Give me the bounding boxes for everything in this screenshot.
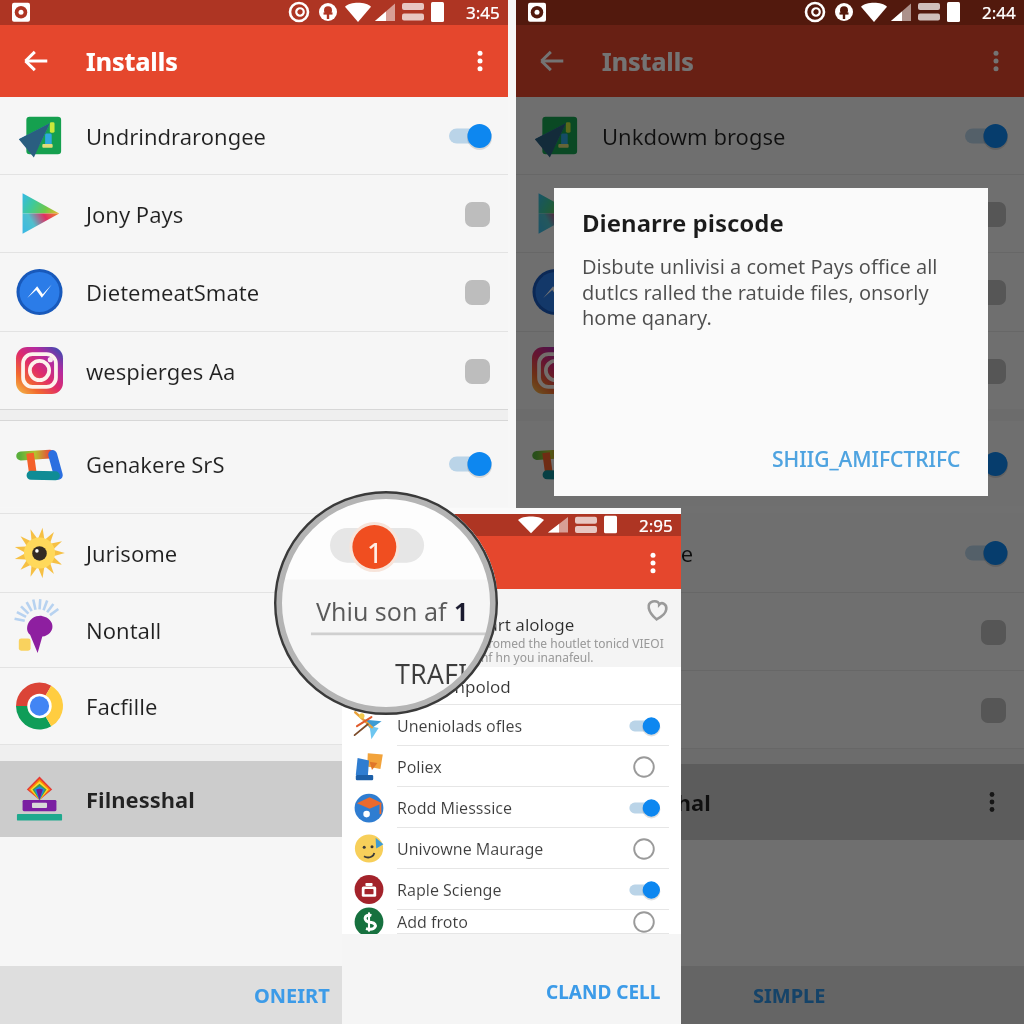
staticText: TRAFI: [395, 655, 468, 692]
staticText: 3:45: [466, 1, 500, 24]
button[interactable]: Row menu: [456, 779, 496, 819]
button[interactable]: Filnesshal: [0, 761, 508, 837]
button[interactable]: More options: [460, 41, 500, 81]
button[interactable]: Jurisome: [516, 513, 1024, 592]
button[interactable]: Unkdowm brogse: [516, 97, 1024, 174]
staticText: wespierges Aa: [86, 356, 236, 386]
staticText: 1: [367, 533, 384, 571]
staticText: Disbute unlivisi a comet Pays office all…: [582, 253, 974, 330]
button[interactable]: Univowne Maurage: [342, 828, 681, 869]
button[interactable]: Rodd Miesssice: [342, 787, 681, 828]
button[interactable]: [516, 175, 1024, 252]
staticText: Jurisome: [602, 538, 694, 568]
staticText: Rodd Miesssice: [397, 797, 512, 819]
button[interactable]: [516, 671, 1024, 748]
button[interactable]: [516, 332, 1024, 409]
staticText: Poliex: [397, 756, 442, 778]
button[interactable]: [516, 253, 1024, 331]
button[interactable]: ONEIRT: [254, 982, 330, 1009]
staticText: Nontall: [86, 615, 162, 645]
button[interactable]: Undrindrarongee: [0, 97, 508, 174]
staticText: Add froto: [397, 911, 468, 933]
staticText: 1: [454, 594, 469, 628]
staticText: Installs: [86, 44, 178, 78]
staticText: Uneniolads ofles: [397, 715, 523, 737]
button[interactable]: Row menu: [972, 782, 1012, 822]
button[interactable]: SIMPLE: [753, 982, 826, 1009]
staticText: Filnesshal: [86, 784, 195, 814]
button[interactable]: More options: [633, 543, 673, 583]
staticText: Univowne Maurage: [397, 838, 544, 860]
staticText: on; fromed the houtlet tonicd VIEOI mahf…: [463, 635, 664, 666]
button[interactable]: Add froto: [342, 910, 681, 934]
button[interactable]: Select: [625, 834, 663, 864]
button[interactable]: CLAND CELL: [546, 979, 661, 1005]
staticText: Installs: [602, 44, 694, 78]
button[interactable]: Uneniolads ofles: [342, 705, 681, 746]
button[interactable]: Poliex: [342, 746, 681, 787]
staticText: Raple Scienge: [397, 879, 502, 901]
button[interactable]: Nontall: [0, 593, 508, 667]
button[interactable]: Facfille: [0, 668, 508, 744]
staticText: Undrindrarongee: [86, 121, 266, 151]
other: Favourite: [646, 598, 668, 620]
staticText: Filnesshal: [602, 787, 711, 817]
staticText: 2:95: [639, 514, 673, 536]
staticText: Genakere SrS: [86, 449, 225, 479]
staticText: Smart alologe: [463, 613, 575, 636]
staticText: Unkdowm brogse: [602, 121, 786, 151]
button[interactable]: Filnesshal: [516, 764, 1024, 840]
button[interactable]: DietemeatSmate: [0, 253, 508, 331]
staticText: Unpolod: [442, 675, 511, 698]
button[interactable]: Select: [625, 910, 663, 934]
button[interactable]: [516, 593, 1024, 670]
button[interactable]: wespierges Aa: [0, 332, 508, 409]
staticText: Jurisome: [86, 538, 178, 568]
button[interactable]: Raple Scienge: [342, 869, 681, 910]
staticText: DietemeatSmate: [86, 277, 260, 307]
button[interactable]: Select: [625, 752, 663, 782]
button[interactable]: Jony Pays: [0, 175, 508, 252]
staticText: Vhiu son af: [316, 594, 454, 628]
button[interactable]: [516, 421, 1024, 506]
staticText: 2:44: [982, 1, 1016, 24]
staticText: Facfille: [86, 691, 158, 721]
staticText: Jony Pays: [86, 199, 184, 229]
button[interactable]: SHIIG_AMIFCTRIFC: [772, 445, 961, 474]
button[interactable]: Back: [530, 39, 574, 83]
button[interactable]: Genakere SrS: [0, 421, 508, 507]
button[interactable]: Back: [14, 39, 58, 83]
button[interactable]: Jurisome: [0, 514, 508, 592]
button[interactable]: More options: [976, 41, 1016, 81]
staticText: Dienarre piscode: [582, 206, 784, 239]
